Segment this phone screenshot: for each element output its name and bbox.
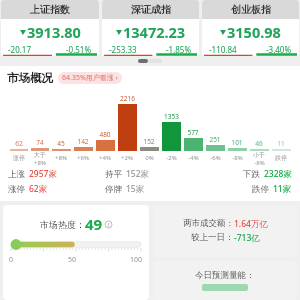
staticText: 480	[99, 130, 111, 139]
other: 说明	[105, 221, 112, 228]
staticText: -110.84	[209, 44, 237, 55]
staticText: 市场热度：	[40, 219, 85, 230]
staticText: 101	[231, 138, 243, 147]
staticText: 上涨	[8, 169, 25, 180]
button[interactable]: 创业板指	[202, 0, 299, 56]
staticText: 251	[209, 135, 221, 144]
staticText: +6%	[77, 154, 89, 162]
staticText: 深证成指	[131, 3, 171, 16]
staticText: 1.64万亿	[234, 218, 268, 230]
staticText: 3913.80	[27, 22, 81, 42]
staticText: -8%	[254, 159, 265, 166]
staticText: -20.17	[8, 44, 32, 55]
staticText: 0%	[145, 154, 154, 162]
staticText: 较上一日：	[191, 232, 234, 243]
staticText: 152家	[126, 168, 150, 180]
staticText: -2%	[166, 154, 177, 162]
button[interactable]: 今日预测量能：	[153, 261, 297, 300]
staticText: 持平	[105, 169, 122, 180]
staticText: +4%	[99, 154, 111, 162]
staticText: 74	[36, 138, 44, 147]
staticText: 1353	[164, 112, 179, 121]
staticText: 大于	[34, 151, 46, 159]
staticText: 50	[68, 255, 77, 265]
staticText: 45	[57, 139, 65, 148]
staticText: 13472.23	[123, 22, 186, 42]
button[interactable]: 市场概况	[7, 71, 300, 85]
staticText: 0	[9, 255, 14, 265]
staticText: 11家	[273, 183, 292, 195]
staticText: 64.35%用户看涨 ›	[62, 73, 118, 83]
staticText: -1.85%	[166, 44, 192, 55]
staticText: 涨停	[8, 184, 25, 195]
staticText: +2%	[121, 154, 133, 162]
staticText: 46	[255, 139, 263, 148]
staticText: 142	[77, 137, 89, 146]
staticText: 577	[187, 128, 199, 137]
staticText: 15家	[126, 183, 145, 195]
staticText: 跌停	[275, 154, 287, 162]
staticText: 小于	[253, 151, 265, 159]
staticText: 跌停	[252, 184, 269, 195]
button[interactable]: 市场热度：	[3, 205, 149, 300]
staticText: 3150.98	[227, 22, 281, 42]
staticText: 152	[143, 137, 155, 146]
staticText: 今日预测量能：	[195, 270, 255, 281]
staticText: -4%	[188, 154, 199, 162]
staticText: 上证指数	[30, 3, 70, 16]
staticText: 2328家	[264, 168, 292, 180]
staticText: 2957家	[29, 168, 57, 180]
staticText: 62家	[29, 183, 48, 195]
staticText: -8%	[232, 154, 243, 162]
staticText: 62	[15, 139, 23, 148]
staticText: 下跌	[243, 169, 260, 180]
staticText: -3.40%	[266, 44, 292, 55]
staticText: -713亿	[234, 232, 260, 244]
staticText: 停牌	[105, 184, 122, 195]
button[interactable]: 两市成交额：	[153, 205, 297, 257]
staticText: 2216	[120, 94, 135, 103]
staticText: +8%	[55, 154, 67, 162]
staticText: -253.33	[109, 44, 137, 55]
staticText: 市场概况	[7, 71, 53, 85]
staticText: 11	[277, 139, 285, 148]
staticText: +8%	[34, 159, 46, 166]
staticText: 49	[85, 214, 103, 234]
staticText: 涨停	[13, 154, 25, 162]
staticText: 创业板指	[231, 3, 271, 16]
button[interactable]: 深证成指	[102, 0, 199, 56]
staticText: -0.51%	[66, 44, 92, 55]
staticText: 100	[130, 255, 143, 265]
staticText: -6%	[210, 154, 221, 162]
staticText: 两市成交额：	[183, 218, 234, 229]
button[interactable]: 上证指数	[1, 0, 99, 56]
